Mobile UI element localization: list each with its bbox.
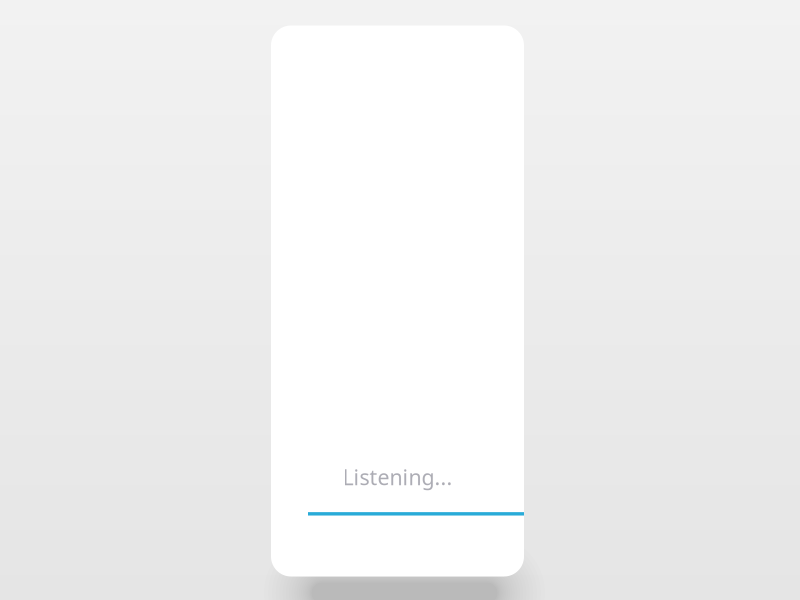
button[interactable]: Listening, tap to stop [271, 463, 524, 515]
staticText: Listening... [342, 463, 452, 491]
